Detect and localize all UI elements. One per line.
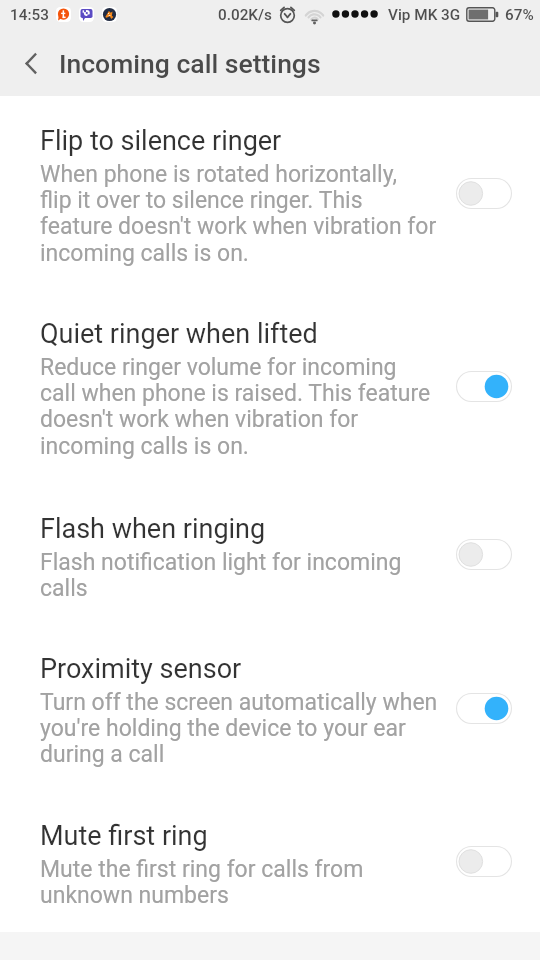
staticText: 0.02K/s bbox=[218, 6, 272, 24]
staticText: doesn't work when vibration for bbox=[40, 406, 359, 433]
button[interactable]: Flash when ringing bbox=[0, 501, 540, 611]
button[interactable]: Quiet ringer when lifted bbox=[0, 306, 540, 469]
staticText: flip it over to silence ringer. This bbox=[40, 187, 363, 214]
button[interactable]: Toggle, on bbox=[456, 371, 513, 402]
staticText: Proximity sensor bbox=[40, 653, 242, 685]
staticText: 67% bbox=[505, 6, 534, 24]
staticText: Quiet ringer when lifted bbox=[40, 318, 318, 350]
staticText: Flash when ringing bbox=[40, 513, 266, 545]
staticText: 14:53 bbox=[10, 6, 49, 24]
staticText: call when phone is raised. This feature bbox=[40, 380, 431, 407]
button[interactable]: Proximity sensor bbox=[0, 641, 540, 778]
staticText: When phone is rotated horizontally, bbox=[40, 161, 397, 188]
staticText: Flash notification light for incoming bbox=[40, 549, 402, 576]
staticText: unknown numbers bbox=[40, 882, 229, 909]
staticText: feature doesn't work when vibration for bbox=[40, 213, 437, 240]
button[interactable]: Back bbox=[2, 34, 58, 90]
staticText: calls bbox=[40, 575, 88, 602]
staticText: incoming calls is on. bbox=[40, 433, 249, 460]
staticText: Incoming call settings bbox=[59, 48, 321, 79]
button[interactable]: Toggle, off bbox=[456, 178, 513, 209]
staticText: Mute first ring bbox=[40, 820, 208, 852]
button[interactable]: Toggle, on bbox=[456, 693, 513, 724]
staticText: Flip to silence ringer bbox=[40, 125, 282, 157]
button[interactable]: Toggle, off bbox=[456, 846, 513, 877]
staticText: during a call bbox=[40, 741, 165, 768]
staticText: Vip MK 3G bbox=[388, 6, 461, 24]
button[interactable]: Toggle, off bbox=[456, 539, 513, 570]
button[interactable]: Flip to silence ringer bbox=[0, 113, 540, 276]
staticText: you're holding the device to your ear bbox=[40, 715, 406, 742]
staticText: Mute the first ring for calls from bbox=[40, 856, 364, 883]
staticText: Reduce ringer volume for incoming bbox=[40, 354, 397, 381]
staticText: Turn off the screen automatically when bbox=[40, 689, 438, 716]
button[interactable]: Mute first ring bbox=[0, 808, 540, 918]
staticText: incoming calls is on. bbox=[40, 240, 249, 267]
